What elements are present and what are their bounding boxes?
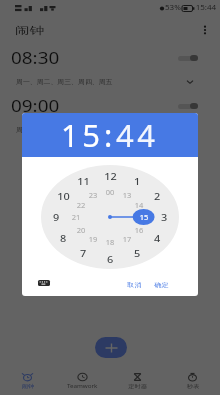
staticText: 3: [161, 211, 167, 224]
staticText: 秒表: [187, 383, 199, 389]
staticText: 12: [104, 170, 117, 183]
staticText: 4: [154, 232, 160, 245]
staticText: 11: [77, 175, 90, 188]
staticText: 17: [122, 235, 132, 244]
button[interactable]: Toggle alarm: [178, 53, 198, 63]
staticText: 定时器: [128, 383, 147, 389]
button[interactable]: Switch to text input mode: [33, 276, 55, 290]
staticText: 08:30: [11, 47, 59, 69]
button[interactable]: 秒表: [165, 366, 220, 395]
staticText: 闹钟: [22, 383, 34, 389]
staticText: 23: [88, 191, 98, 200]
staticText: 5: [134, 247, 140, 260]
button[interactable]: Toggle alarm: [178, 101, 198, 111]
staticText: 9: [52, 211, 59, 224]
button[interactable]: 08:30: [0, 45, 220, 93]
staticText: 周六、周日: [16, 126, 51, 134]
staticText: 2: [154, 190, 160, 203]
staticText: 15:44: [196, 3, 216, 13]
staticText: 10: [57, 190, 70, 203]
button[interactable]: 闹钟: [0, 366, 55, 395]
button[interactable]: Teamwork: [55, 366, 110, 395]
staticText: 确定: [154, 281, 169, 289]
staticText: 7: [80, 247, 86, 260]
staticText: 取消: [127, 281, 142, 289]
staticText: 1: [134, 175, 140, 188]
staticText: 44: [116, 114, 159, 156]
staticText: 21: [71, 213, 81, 222]
button[interactable]: 取消: [123, 277, 146, 293]
staticText: 闹钟: [15, 24, 44, 36]
button[interactable]: 定时器: [110, 366, 165, 395]
button[interactable]: 09:00: [0, 93, 220, 141]
staticText: 00: [105, 188, 115, 197]
staticText: 09:00: [11, 95, 59, 117]
staticText: 15: [61, 114, 104, 156]
staticText: Teamwork: [67, 383, 98, 390]
button[interactable]: Add alarm: [95, 337, 127, 358]
button[interactable]: 确定: [150, 277, 173, 293]
staticText: 53%: [165, 3, 181, 13]
staticText: 周一、周二、周三、周四、周五: [16, 78, 112, 86]
staticText: 22: [76, 201, 86, 210]
staticText: 15: [139, 213, 149, 222]
staticText: :: [104, 114, 116, 156]
staticText: 8: [59, 232, 66, 245]
staticText: 14: [134, 201, 144, 210]
staticText: 13: [122, 191, 132, 200]
staticText: 20: [76, 226, 86, 235]
button[interactable]: 15: [61, 114, 104, 156]
button[interactable]: More options: [194, 19, 216, 41]
button[interactable]: 44: [116, 114, 159, 156]
staticText: 16: [134, 226, 144, 235]
staticText: 19: [88, 235, 98, 244]
staticText: 6: [107, 253, 113, 266]
staticText: 18: [105, 238, 115, 247]
